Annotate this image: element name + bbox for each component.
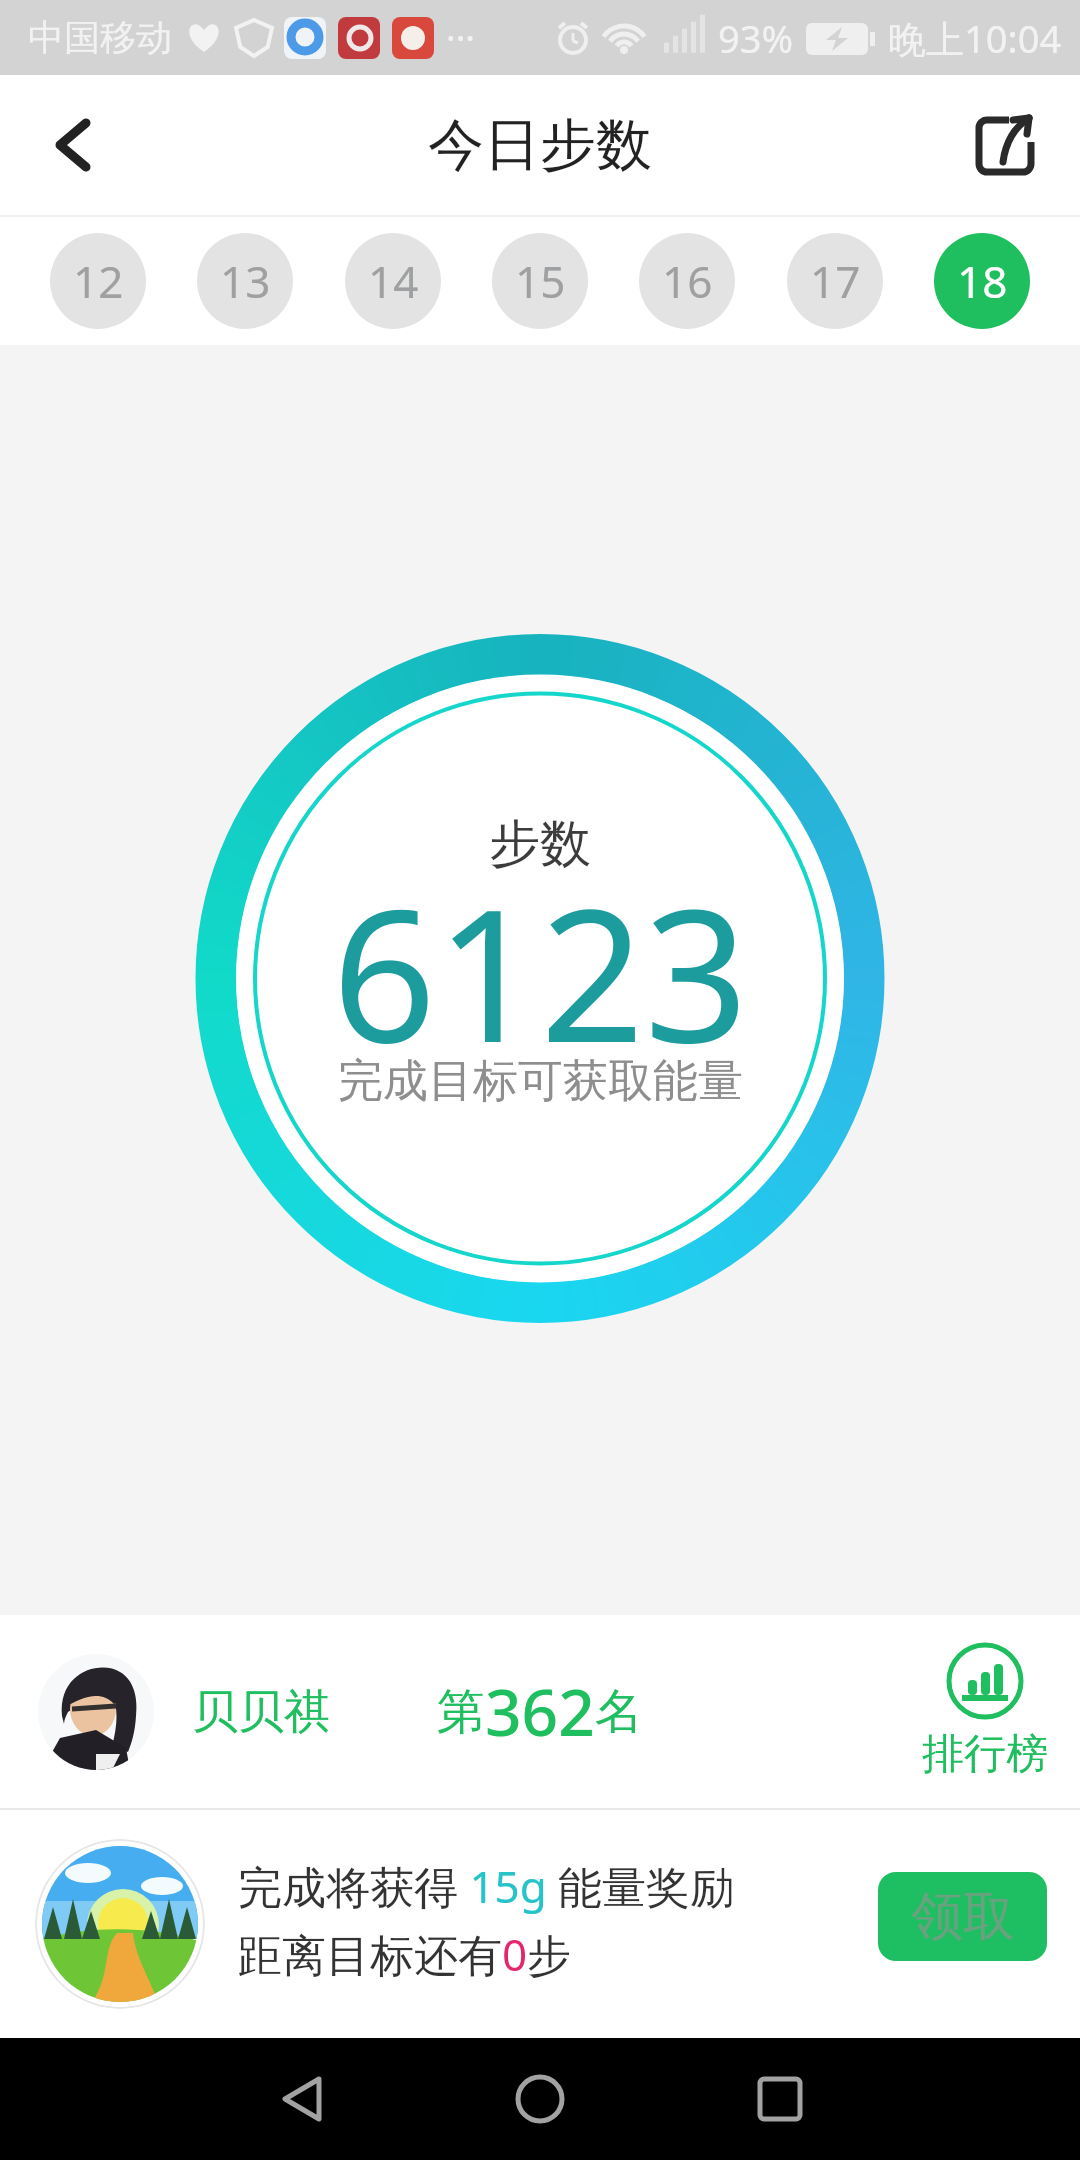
staticText: 中国移动 bbox=[28, 15, 172, 60]
button[interactable]: 领取 bbox=[878, 1872, 1047, 1961]
button[interactable]: 排行榜 bbox=[922, 1642, 1048, 1781]
staticText: 14 bbox=[368, 251, 419, 311]
button[interactable] bbox=[976, 115, 1036, 175]
staticText: 贝贝祺 bbox=[192, 1683, 330, 1741]
staticText: 13 bbox=[220, 251, 271, 311]
button[interactable] bbox=[748, 2067, 812, 2131]
button[interactable]: 14 bbox=[345, 233, 441, 329]
staticText: 15 bbox=[515, 251, 566, 311]
staticText: 完成将获得 15g 能量奖励 bbox=[238, 1856, 735, 1916]
button[interactable] bbox=[508, 2067, 572, 2131]
staticText: 16 bbox=[662, 251, 713, 311]
staticText: 362 bbox=[485, 1668, 595, 1755]
staticText: 93% bbox=[718, 12, 794, 64]
staticText: 步数 bbox=[489, 812, 591, 876]
staticText: 领取 bbox=[911, 1884, 1015, 1950]
button[interactable]: 12 bbox=[50, 233, 146, 329]
button[interactable] bbox=[40, 113, 104, 177]
staticText: 12 bbox=[73, 251, 124, 311]
staticText: 18 bbox=[957, 251, 1008, 311]
staticText: 17 bbox=[810, 251, 861, 311]
button[interactable]: 18 bbox=[934, 233, 1030, 329]
staticText: 名 bbox=[595, 1682, 643, 1742]
button[interactable]: 13 bbox=[197, 233, 293, 329]
staticText: 排行榜 bbox=[922, 1728, 1048, 1781]
staticText: 距离目标还有0步 bbox=[238, 1924, 572, 1984]
button[interactable]: 15 bbox=[492, 233, 588, 329]
staticText: 6123 bbox=[332, 847, 749, 1095]
staticText: 完成目标可获取能量 bbox=[338, 1053, 743, 1110]
button[interactable]: 16 bbox=[639, 233, 735, 329]
staticText: 第 bbox=[437, 1682, 485, 1742]
staticText: 今日步数 bbox=[428, 110, 652, 181]
button[interactable]: 贝贝祺 bbox=[0, 1615, 1080, 1808]
staticText: 晚上10:04 bbox=[888, 12, 1062, 64]
button[interactable] bbox=[270, 2067, 334, 2131]
button[interactable]: 17 bbox=[787, 233, 883, 329]
staticText: ··· bbox=[446, 13, 475, 62]
